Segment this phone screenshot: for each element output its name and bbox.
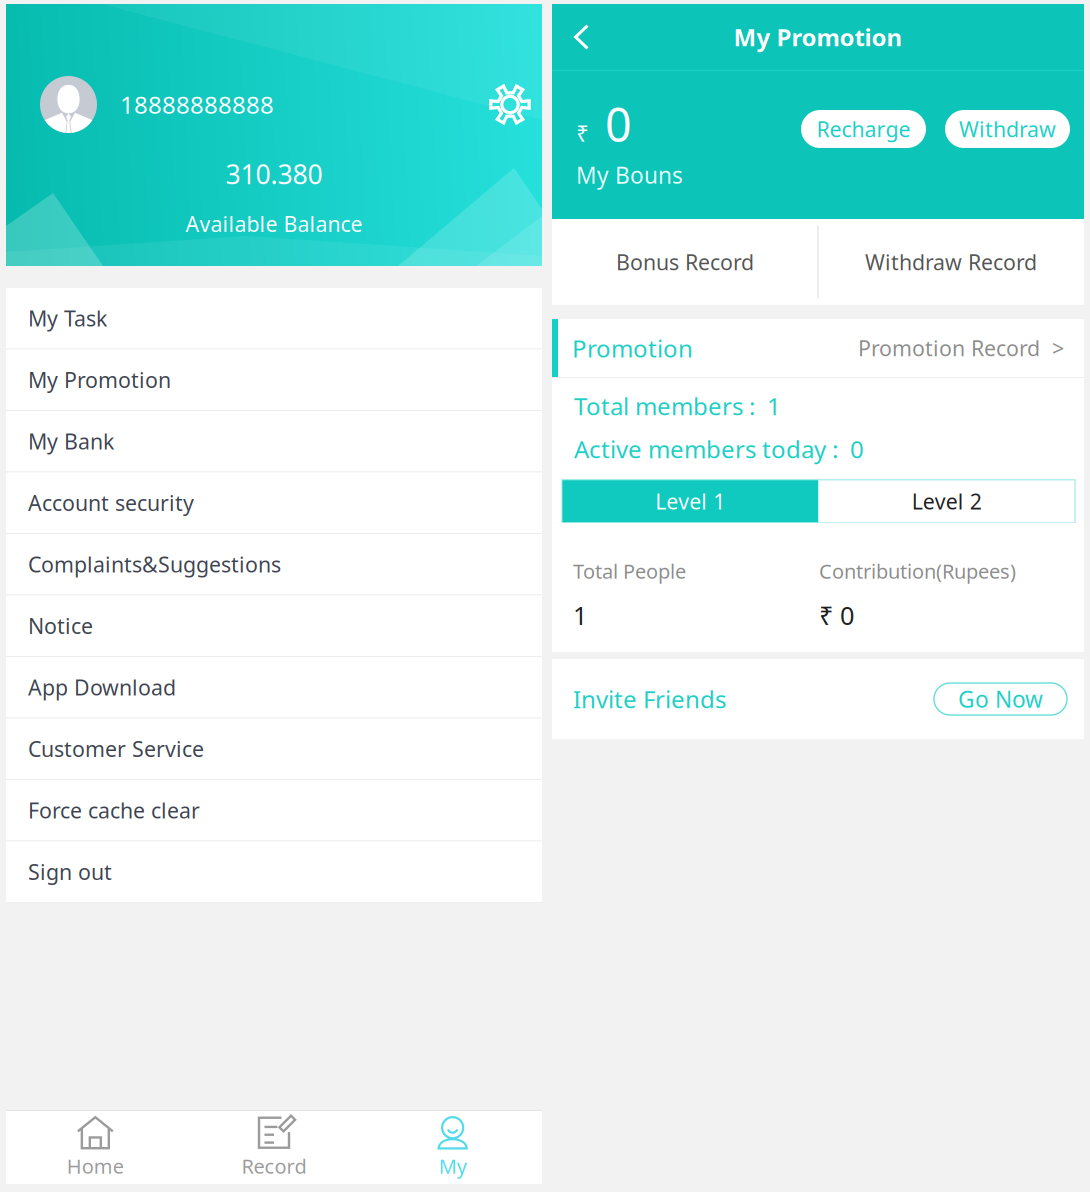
- button[interactable]: My: [363, 1111, 542, 1184]
- staticText: 18888888888: [120, 89, 274, 120]
- button[interactable]: Withdraw Record: [818, 219, 1084, 305]
- staticText: Bonus Record: [616, 248, 754, 276]
- button[interactable]: My Bank: [6, 411, 542, 471]
- staticText: 310.380: [225, 156, 322, 192]
- staticText: My Bank: [28, 427, 114, 455]
- button[interactable]: Level 2: [818, 480, 1075, 523]
- button[interactable]: My Promotion: [6, 349, 542, 410]
- staticText: Withdraw Record: [865, 248, 1037, 276]
- button[interactable]: Promotion: [552, 319, 1084, 377]
- staticText: 0: [605, 93, 632, 155]
- staticText: ₹ 0: [819, 598, 854, 632]
- button[interactable]: My Task: [6, 288, 542, 348]
- staticText: Level 1: [655, 487, 725, 515]
- button[interactable]: Home: [6, 1111, 185, 1184]
- staticText: Promotion: [572, 332, 693, 364]
- staticText: Home: [67, 1153, 124, 1179]
- staticText: Active members today : 0: [574, 433, 864, 465]
- staticText: Go Now: [958, 684, 1043, 714]
- button[interactable]: Complaints&Suggestions: [6, 534, 542, 594]
- button[interactable]: Notice: [6, 595, 542, 656]
- staticText: Record: [241, 1153, 306, 1179]
- button[interactable]: Settings: [485, 79, 535, 129]
- button[interactable]: Recharge: [801, 110, 926, 148]
- button[interactable]: Customer Service: [6, 718, 542, 779]
- staticText: Level 2: [912, 487, 982, 515]
- staticText: Recharge: [816, 115, 910, 143]
- staticText: Complaints&Suggestions: [28, 550, 281, 578]
- button[interactable]: Withdraw: [945, 110, 1070, 148]
- staticText: Available Balance: [185, 210, 362, 238]
- staticText: My Promotion: [733, 21, 902, 53]
- staticText: Force cache clear: [28, 796, 200, 824]
- staticText: Promotion Record >: [858, 334, 1064, 362]
- staticText: My Task: [28, 304, 107, 332]
- staticText: My: [439, 1153, 467, 1179]
- button[interactable]: Account security: [6, 472, 542, 533]
- button[interactable]: Force cache clear: [6, 780, 542, 840]
- staticText: Sign out: [28, 858, 112, 886]
- button[interactable]: Bonus Record: [552, 219, 818, 305]
- staticText: My Promotion: [28, 366, 171, 394]
- staticText: 1: [573, 598, 587, 632]
- button[interactable]: Record: [185, 1111, 363, 1184]
- staticText: Invite Friends: [573, 683, 726, 715]
- staticText: Total members : 1: [574, 390, 781, 422]
- button[interactable]: Level 1: [562, 480, 818, 523]
- staticText: Account security: [28, 489, 194, 517]
- staticText: App Download: [28, 673, 176, 701]
- staticText: Withdraw: [959, 115, 1056, 143]
- staticText: Customer Service: [28, 735, 204, 763]
- button[interactable]: Back: [567, 18, 596, 56]
- staticText: Total People: [573, 558, 686, 584]
- button[interactable]: Sign out: [6, 841, 542, 902]
- staticText: Contribution(Rupees): [819, 558, 1016, 584]
- staticText: ₹: [576, 118, 589, 148]
- staticText: Notice: [28, 612, 93, 640]
- button[interactable]: App Download: [6, 657, 542, 717]
- button[interactable]: Go Now: [934, 683, 1067, 715]
- staticText: My Bouns: [576, 160, 683, 190]
